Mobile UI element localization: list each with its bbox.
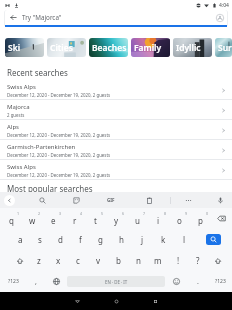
- button[interactable]: z: [29, 250, 48, 271]
- staticText: 2: [38, 211, 41, 216]
- button[interactable]: Ski: [5, 38, 44, 57]
- button[interactable]: k: [153, 229, 174, 250]
- staticText: Recent searches: [7, 67, 68, 78]
- button[interactable]: 0: [190, 208, 211, 229]
- staticText: Idyllic: [176, 42, 201, 54]
- button[interactable]: 4: [64, 208, 85, 229]
- staticText: 4:04: [219, 2, 229, 9]
- button[interactable]: Alps: [0, 120, 232, 140]
- button[interactable]: Swiss Alps: [0, 160, 232, 180]
- staticText: ?123: [8, 278, 19, 285]
- button[interactable]: Recent apps: [146, 292, 164, 310]
- button[interactable]: v: [88, 250, 108, 271]
- button[interactable]: h: [111, 229, 132, 250]
- button[interactable]: More options: [181, 193, 195, 207]
- staticText: Ski: [8, 42, 21, 54]
- button[interactable]: Home: [107, 292, 125, 310]
- staticText: 1: [17, 211, 20, 216]
- button[interactable]: 6: [106, 208, 127, 229]
- button[interactable]: a: [10, 229, 30, 250]
- staticText: u: [135, 215, 140, 226]
- button[interactable]: 2: [22, 208, 43, 229]
- staticText: December 12, 2020 - December 19, 2020, 2…: [7, 132, 111, 138]
- staticText: December 12, 2020 - December 19, 2020, 2…: [7, 152, 111, 158]
- staticText: Majorca: [7, 103, 30, 111]
- staticText: Surf: [218, 42, 232, 54]
- button[interactable]: Shift: [10, 250, 29, 271]
- button[interactable]: 5: [85, 208, 106, 229]
- staticText: Cities: [50, 42, 73, 54]
- button[interactable]: 8: [148, 208, 169, 229]
- button[interactable]: s: [30, 229, 50, 250]
- button[interactable]: Family: [131, 38, 170, 57]
- staticText: 8: [164, 211, 167, 216]
- button[interactable]: Emoji: [165, 271, 187, 292]
- button[interactable]: ?: [188, 250, 208, 271]
- button[interactable]: Swiss Alps: [0, 80, 232, 100]
- button[interactable]: Change language: [46, 271, 67, 292]
- staticText: Most popular searches: [7, 183, 93, 194]
- button[interactable]: Idyllic: [173, 38, 212, 57]
- staticText: 3: [59, 211, 62, 216]
- button[interactable]: Shift: [208, 250, 228, 271]
- button[interactable]: Stickers: [69, 193, 83, 207]
- button[interactable]: g: [90, 229, 111, 250]
- button[interactable]: Account: [214, 12, 225, 23]
- button[interactable]: 9: [169, 208, 190, 229]
- staticText: k: [161, 234, 166, 245]
- staticText: Beaches: [92, 42, 127, 54]
- staticText: Family: [134, 42, 162, 54]
- button[interactable]: j: [132, 229, 153, 250]
- staticText: ?123: [215, 278, 226, 285]
- button[interactable]: Search: [35, 193, 49, 207]
- staticText: p: [198, 215, 203, 226]
- button[interactable]: 7: [127, 208, 148, 229]
- button[interactable]: l: [174, 229, 195, 250]
- button[interactable]: Search: [206, 234, 221, 245]
- staticText: !: [177, 255, 180, 266]
- staticText: ,: [35, 277, 37, 287]
- staticText: Swiss Alps: [7, 83, 36, 91]
- button[interactable]: Clipboard: [142, 193, 156, 207]
- staticText: t: [94, 215, 97, 226]
- button[interactable]: b: [108, 250, 128, 271]
- button[interactable]: Voice input: [213, 193, 227, 207]
- button[interactable]: m: [148, 250, 168, 271]
- button[interactable]: Expand toolbar: [2, 193, 16, 207]
- button[interactable]: 3: [43, 208, 64, 229]
- button[interactable]: ?123: [0, 271, 26, 292]
- button[interactable]: 1: [0, 208, 22, 229]
- staticText: 2 guests: [7, 112, 25, 118]
- button[interactable]: GIF: [104, 193, 118, 207]
- button[interactable]: Back: [5, 10, 227, 25]
- button[interactable]: d: [50, 229, 70, 250]
- button[interactable]: Garmisch-Partenkirchen: [0, 140, 232, 160]
- button[interactable]: ?123: [208, 271, 232, 292]
- button[interactable]: Cities: [47, 38, 86, 57]
- button[interactable]: f: [70, 229, 90, 250]
- button[interactable]: Beaches: [89, 38, 128, 57]
- staticText: g: [98, 234, 103, 245]
- button[interactable]: .: [187, 271, 208, 292]
- staticText: 0: [206, 211, 209, 216]
- button[interactable]: n: [128, 250, 148, 271]
- staticText: o: [177, 215, 182, 226]
- button[interactable]: Majorca: [0, 100, 232, 120]
- button[interactable]: Back: [68, 292, 86, 310]
- button[interactable]: c: [68, 250, 88, 271]
- button[interactable]: ,: [26, 271, 46, 292]
- staticText: v: [96, 255, 101, 266]
- button[interactable]: Space: [67, 276, 165, 287]
- button[interactable]: Surf: [215, 38, 232, 57]
- staticText: r: [73, 215, 77, 226]
- staticText: b: [116, 255, 121, 266]
- staticText: j: [141, 234, 144, 245]
- staticText: w: [29, 215, 36, 226]
- button[interactable]: x: [48, 250, 68, 271]
- staticText: i: [157, 215, 160, 226]
- staticText: l: [183, 234, 186, 245]
- button[interactable]: !: [168, 250, 188, 271]
- button[interactable]: Backspace: [211, 208, 232, 229]
- staticText: EN · DE · IT: [105, 279, 128, 285]
- staticText: .: [197, 277, 199, 287]
